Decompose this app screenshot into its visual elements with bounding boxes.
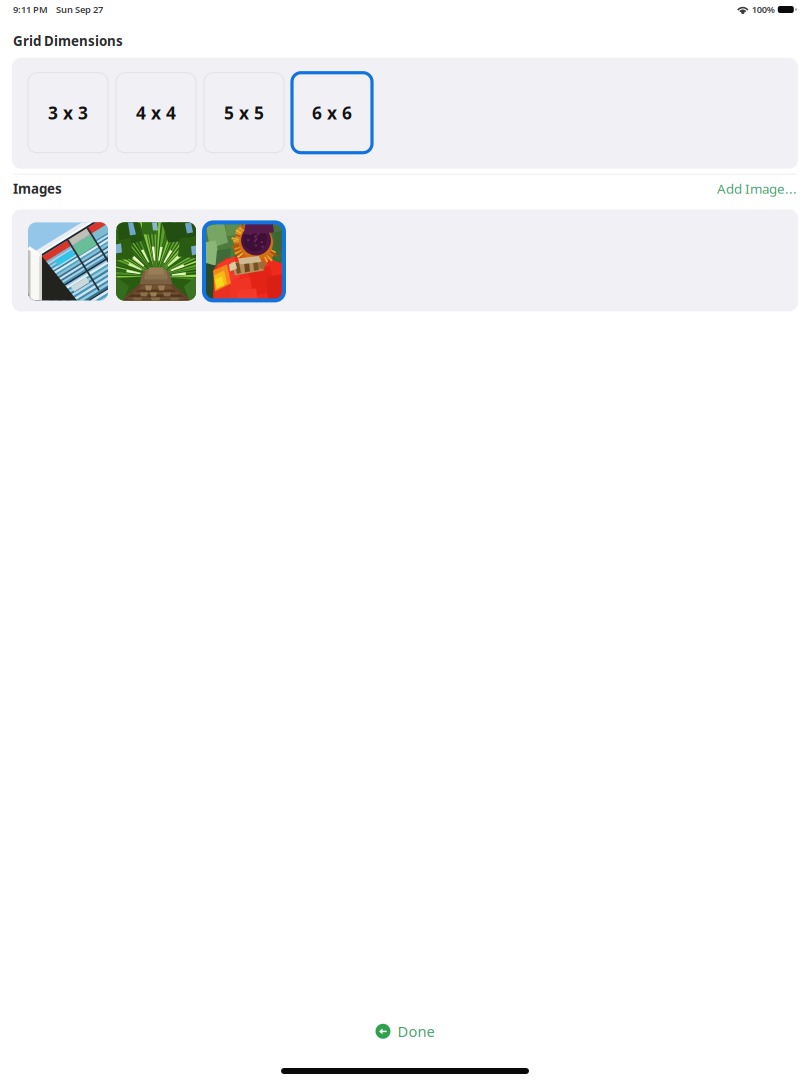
staticText: Sun Sep 27 [56,3,103,16]
staticText: 9:11 PM [13,3,48,16]
staticText: 5 x 5 [224,101,264,124]
staticText: 6 x 6 [312,101,352,124]
staticText: 100% [752,3,775,16]
button[interactable]: 4 x 4 [116,73,196,153]
staticText: Done [397,1021,434,1041]
button[interactable]: 6 x 6 [292,73,372,153]
staticText: Images [13,180,62,197]
staticText: 4 x 4 [136,101,176,124]
staticText: Add Image... [717,180,797,197]
button[interactable]: 5 x 5 [204,73,284,153]
button[interactable]: Flower photo, selected [204,222,284,300]
staticText: 3 x 3 [48,101,88,124]
button[interactable]: Palm tree photo [116,222,196,300]
button[interactable]: 3 x 3 [28,73,108,153]
button[interactable]: Glass building photo [28,222,108,300]
button[interactable]: Add Image... [717,180,797,197]
button[interactable]: Done [375,1021,434,1041]
staticText: Grid Dimensions [13,32,123,50]
